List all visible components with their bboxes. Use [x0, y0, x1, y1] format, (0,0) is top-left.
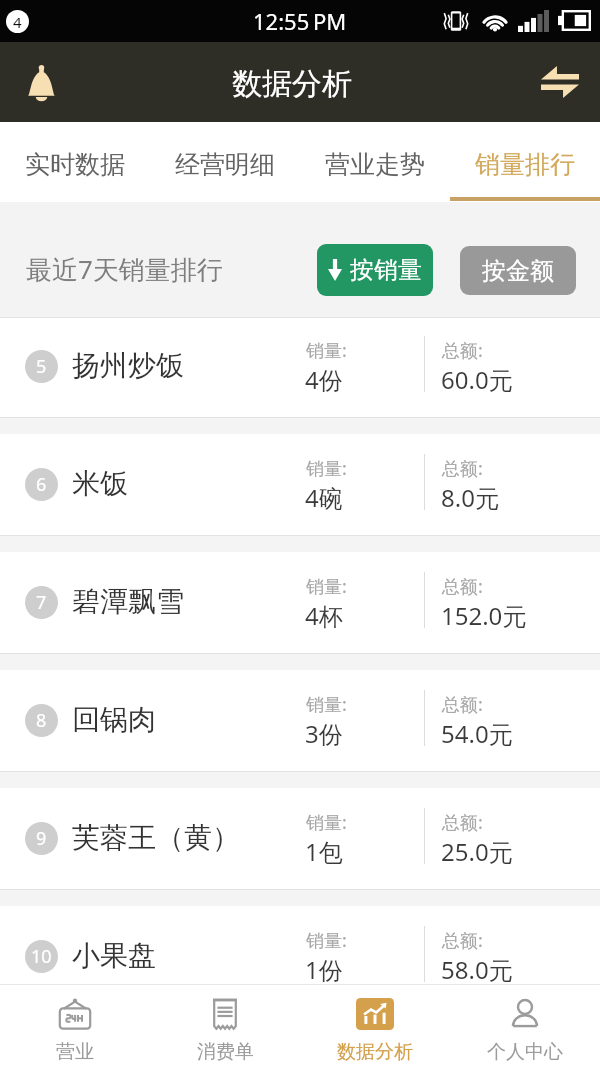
- staticText: 10: [31, 944, 52, 969]
- staticText: 按销量: [350, 255, 422, 285]
- staticText: 总额:: [442, 928, 483, 953]
- staticText: 5: [36, 354, 47, 379]
- button[interactable]: 实时数据: [0, 122, 150, 202]
- staticText: 4: [13, 12, 22, 32]
- staticText: 9: [36, 826, 47, 851]
- staticText: 60.0元: [441, 363, 513, 396]
- staticText: 总额:: [442, 574, 483, 599]
- button[interactable]: 营业走势: [300, 122, 450, 202]
- staticText: 按金额: [482, 256, 554, 286]
- staticText: 1包: [305, 835, 343, 868]
- staticText: 销量:: [306, 574, 347, 599]
- staticText: 总额:: [442, 692, 483, 717]
- button[interactable]: 按销量: [317, 244, 433, 296]
- staticText: 碧潭飘雪: [72, 584, 184, 619]
- staticText: 销量排行: [475, 149, 575, 180]
- button[interactable]: 消费单: [150, 989, 300, 1067]
- staticText: 回锅肉: [72, 702, 156, 737]
- staticText: 销量:: [306, 338, 347, 363]
- staticText: 销量:: [306, 692, 347, 717]
- staticText: 营业走势: [325, 149, 425, 180]
- staticText: 销量:: [306, 810, 347, 835]
- staticText: 8: [36, 708, 47, 733]
- staticText: 经营明细: [175, 149, 275, 180]
- staticText: 个人中心: [487, 1040, 563, 1064]
- staticText: 总额:: [442, 456, 483, 481]
- staticText: 营业: [56, 1040, 94, 1064]
- staticText: 总额:: [442, 338, 483, 363]
- staticText: 实时数据: [25, 149, 125, 180]
- button[interactable]: 按金额: [460, 246, 576, 295]
- button[interactable]: 10: [0, 906, 600, 984]
- button[interactable]: Switch view: [520, 42, 600, 122]
- button[interactable]: 数据分析: [300, 989, 450, 1067]
- staticText: 数据分析: [337, 1040, 413, 1064]
- staticText: 54.0元: [441, 717, 513, 750]
- staticText: 芙蓉王（黄）: [72, 820, 240, 855]
- staticText: 米饭: [72, 466, 128, 501]
- button[interactable]: 8: [0, 670, 600, 771]
- staticText: 4杯: [305, 599, 343, 632]
- staticText: 最近7天销量排行: [26, 251, 223, 287]
- staticText: 25.0元: [441, 835, 513, 868]
- staticText: 销量:: [306, 928, 347, 953]
- staticText: 3份: [305, 717, 343, 750]
- button[interactable]: 经营明细: [150, 122, 300, 202]
- staticText: 4碗: [305, 481, 343, 514]
- staticText: 销量:: [306, 456, 347, 481]
- button[interactable]: Notifications: [0, 42, 84, 122]
- staticText: 总额:: [442, 810, 483, 835]
- staticText: 7: [36, 590, 47, 615]
- staticText: 消费单: [197, 1040, 254, 1064]
- staticText: 数据分析: [232, 65, 352, 103]
- button[interactable]: 营业: [0, 989, 150, 1067]
- staticText: 8.0元: [441, 481, 499, 514]
- staticText: 152.0元: [441, 599, 527, 632]
- staticText: 58.0元: [441, 953, 513, 984]
- staticText: 6: [36, 472, 47, 497]
- button[interactable]: 9: [0, 788, 600, 889]
- staticText: 12:55 PM: [253, 6, 347, 36]
- staticText: 1份: [305, 953, 343, 984]
- staticText: 小果盘: [72, 938, 156, 973]
- staticText: 扬州炒饭: [72, 348, 184, 383]
- button[interactable]: 6: [0, 434, 600, 535]
- button[interactable]: 5: [0, 318, 600, 417]
- staticText: 4份: [305, 363, 343, 396]
- button[interactable]: 7: [0, 552, 600, 653]
- button[interactable]: 个人中心: [450, 989, 600, 1067]
- button[interactable]: 销量排行: [450, 122, 600, 202]
